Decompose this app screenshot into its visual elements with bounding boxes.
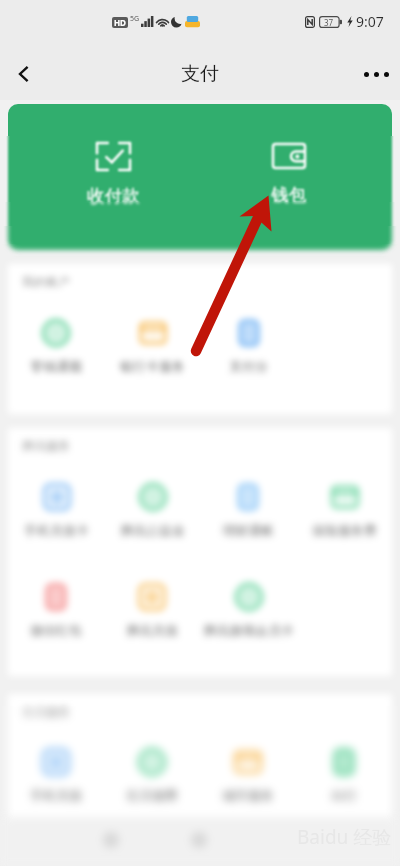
button[interactable]: 腾讯公益金 [104,502,200,508]
button[interactable]: 零钱通额 [8,364,104,370]
button[interactable]: 腾讯微视会员卡 [200,598,296,604]
button[interactable]: 银行卡服务 [104,364,200,370]
button[interactable]: 零钱通额 [8,340,104,346]
button[interactable]: 收付款 [58,202,168,207]
button[interactable]: 腾讯微视会员卡 [200,628,296,634]
button[interactable]: 理财通帐 [200,508,296,514]
button[interactable]: 腾讯公益金 [104,538,200,544]
button[interactable]: 手机充值卡 [8,526,104,532]
button[interactable]: 腾讯公益金 [104,484,200,490]
button[interactable]: 腾讯公益金 [104,490,200,496]
button[interactable]: 手机充值卡 [8,520,104,526]
button[interactable]: 银行卡服务 [104,328,200,334]
button[interactable]: 生活缴费 [104,772,200,778]
button[interactable]: 城市服务 [200,772,296,778]
button[interactable]: 理财通帐 [200,483,296,484]
button[interactable]: 零钱通额 [8,358,104,364]
button[interactable]: 腾讯充值 [104,592,200,598]
button[interactable]: 城市服务 [200,802,296,808]
button[interactable]: 出行 [296,766,392,772]
button[interactable]: 手机充值卡 [8,483,104,484]
button[interactable]: 腾讯公益金 [104,508,200,514]
button[interactable]: 支付分 [200,370,296,376]
button[interactable]: 理财通帐 [200,526,296,532]
button[interactable]: 城市服务 [200,784,296,790]
button[interactable]: 理财通帐 [200,538,296,544]
button[interactable]: 腾讯公益金 [104,483,200,484]
button[interactable]: 理财通帐 [200,502,296,508]
button[interactable]: 收付款 [58,148,168,154]
button[interactable]: 理财通帐 [200,490,296,496]
button[interactable]: 腾讯微视会员卡 [200,604,296,610]
button[interactable]: 钱包 [233,190,343,196]
button[interactable]: 零钱通额 [8,322,104,328]
button[interactable]: 手机充值 [8,778,104,784]
button[interactable]: 理财通帐 [200,520,296,526]
button[interactable]: 出行 [296,796,392,802]
button[interactable]: 零钱通额 [8,319,104,322]
button[interactable]: 手机充值 [8,796,104,802]
button[interactable]: 收付款 [58,160,168,166]
button[interactable]: 腾讯公益金 [104,526,200,532]
button[interactable]: 零钱通额 [8,334,104,340]
button[interactable]: 手机充值 [8,790,104,796]
button[interactable]: 腾讯充值 [104,604,200,610]
button[interactable]: 钱包 [233,202,343,206]
button[interactable]: 腾讯充值 [104,628,200,634]
button[interactable]: 银行卡服务 [104,340,200,346]
button[interactable]: 出行 [296,748,392,754]
button[interactable]: 腾讯充值 [104,598,200,604]
button[interactable]: 保险服务费 [296,538,392,544]
button[interactable]: 手机充值 [8,760,104,766]
button[interactable]: 收付款 [58,166,168,172]
button[interactable]: 支付分 [200,319,296,322]
button[interactable]: 银行卡服务 [104,370,200,376]
button[interactable]: 保险服务费 [296,483,392,484]
button[interactable]: 钱包 [233,143,343,148]
button[interactable]: 城市服务 [200,766,296,772]
button[interactable]: 手机充值卡 [8,508,104,514]
button[interactable]: 出行 [296,802,392,808]
button[interactable]: 手机充值卡 [8,484,104,490]
button[interactable]: 微信红包 [8,583,104,586]
button[interactable]: 腾讯微视会员卡 [200,610,296,616]
button[interactable]: 生活缴费 [104,802,200,808]
button[interactable]: 出行 [296,778,392,784]
button[interactable]: 生活缴费 [104,766,200,772]
button[interactable]: 微信红包 [8,586,104,592]
button[interactable]: 银行卡服务 [104,334,200,340]
button[interactable]: 出行 [296,790,392,796]
button[interactable]: 生活缴费 [104,760,200,766]
button[interactable]: 腾讯公益金 [104,496,200,502]
button[interactable]: 微信红包 [8,610,104,616]
button[interactable]: 城市服务 [200,760,296,766]
button[interactable]: 腾讯微视会员卡 [200,622,296,628]
button[interactable]: 腾讯公益金 [104,520,200,526]
button[interactable]: 城市服务 [200,754,296,760]
button[interactable]: 城市服务 [200,748,296,754]
button[interactable]: 腾讯微视会员卡 [200,592,296,598]
button[interactable]: 生活缴费 [104,790,200,796]
button[interactable]: 保险服务费 [296,532,392,538]
button[interactable]: 收付款 [58,190,168,196]
button[interactable]: 微信红包 [8,598,104,604]
button[interactable]: 手机充值 [8,784,104,790]
button[interactable]: 腾讯微视会员卡 [200,634,296,640]
button[interactable]: 微信红包 [8,628,104,634]
button[interactable]: 手机充值卡 [8,502,104,508]
button[interactable]: 支付分 [200,364,296,370]
